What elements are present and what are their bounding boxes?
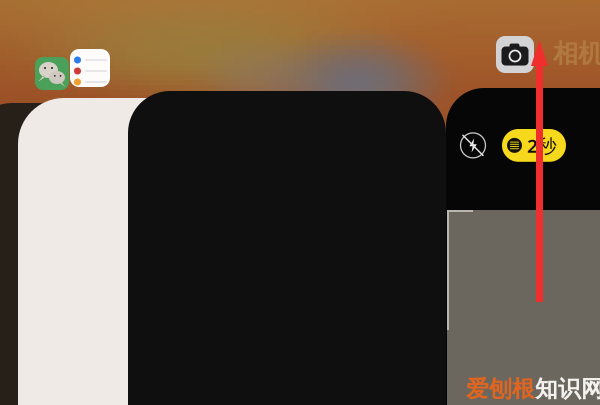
staticText: 相机 [553,38,600,69]
button[interactable]: App card [18,98,218,405]
button[interactable]: App card [128,91,446,405]
staticText: 2秒 [527,133,557,158]
button[interactable]: Camera app card [446,88,600,405]
staticText: 爱刨根 [466,375,535,403]
staticText: 知识网 [535,375,600,403]
button[interactable]: Background app card [0,103,120,405]
